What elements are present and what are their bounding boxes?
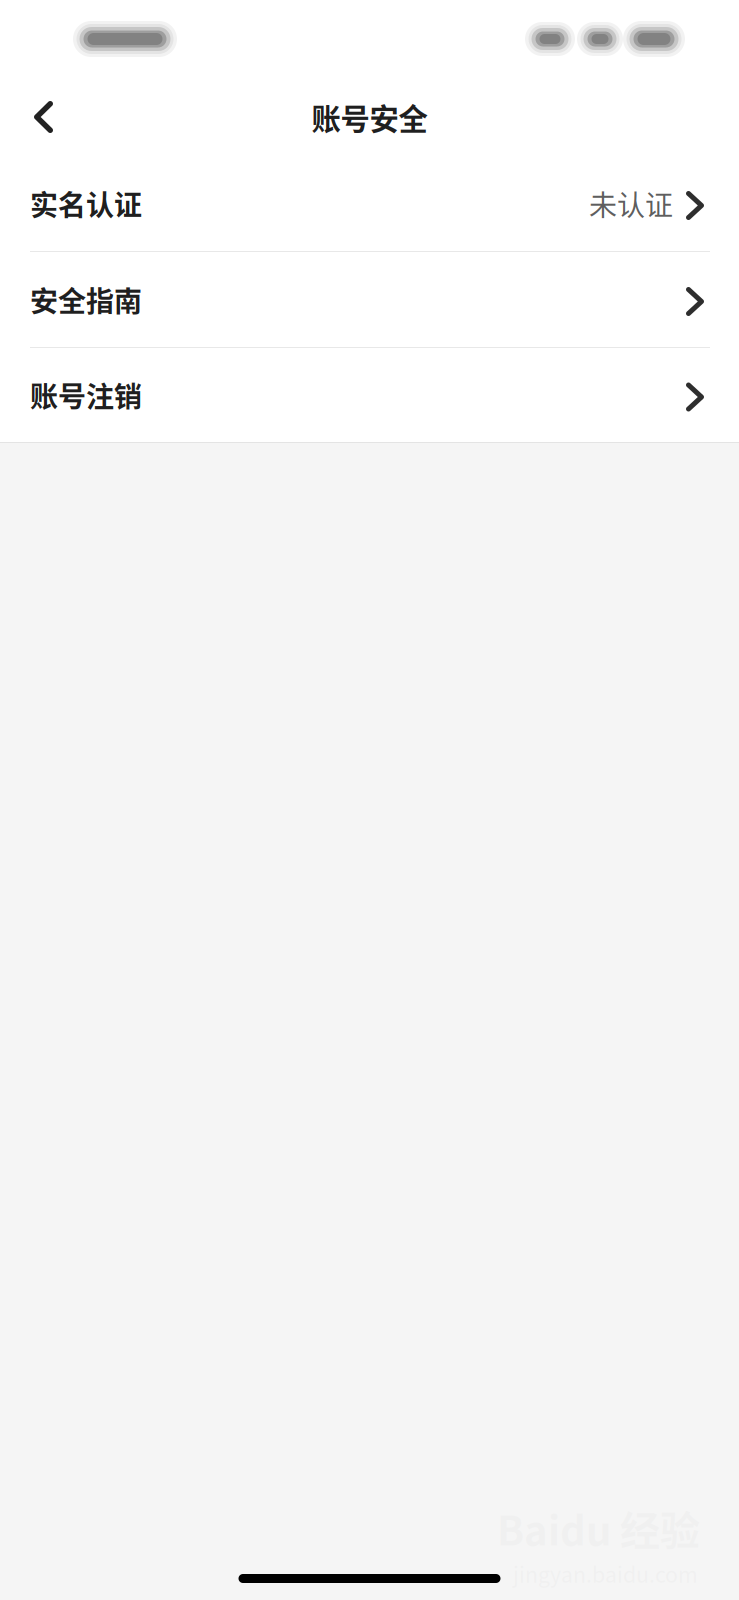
- staticText: 账号安全: [311, 96, 427, 138]
- button[interactable]: 账号注销: [0, 348, 739, 442]
- button[interactable]: 安全指南: [0, 252, 739, 348]
- staticText: 安全指南: [30, 279, 142, 320]
- staticText: 未认证: [589, 183, 673, 224]
- staticText: 账号注销: [30, 375, 142, 415]
- button[interactable]: 返回: [0, 78, 79, 156]
- staticText: 实名认证: [30, 183, 142, 224]
- button[interactable]: 实名认证: [0, 156, 739, 252]
